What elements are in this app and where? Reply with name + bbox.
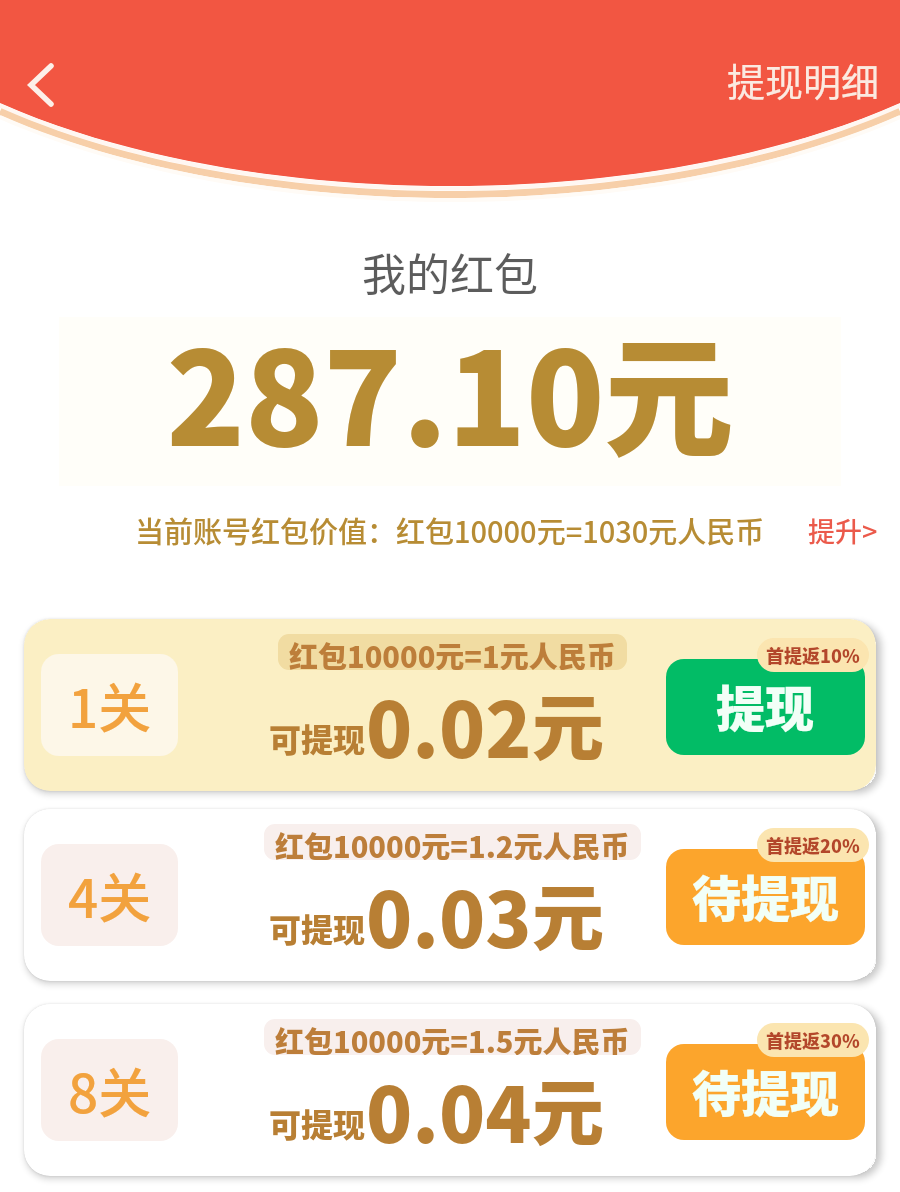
staticText: 当前账号红包价值：红包10000元=1030元人民币 <box>135 509 765 551</box>
staticText: 0.03 <box>366 860 532 970</box>
button[interactable]: 待提现 <box>666 1044 865 1140</box>
staticText: 首提返20% <box>766 832 860 858</box>
button[interactable]: 8关 <box>24 1004 876 1176</box>
staticText: 红包10000元=1.2元人民币 <box>275 824 630 860</box>
staticText: 4关 <box>68 857 152 934</box>
staticText: 1关 <box>68 667 152 744</box>
staticText: 元 <box>532 1055 605 1159</box>
button[interactable]: 1关 <box>24 619 876 791</box>
staticText: 可提现 <box>269 905 366 951</box>
button[interactable]: 待提现 <box>666 849 865 945</box>
staticText: 可提现 <box>269 1100 366 1146</box>
staticText: 红包10000元=1.5元人民币 <box>275 1019 630 1055</box>
staticText: 红包10000元=1元人民币 <box>289 634 616 670</box>
button[interactable]: 提现明细 <box>727 52 880 107</box>
staticText: 可提现 <box>269 715 366 761</box>
staticText: 提现 <box>716 670 815 741</box>
button[interactable]: Back <box>10 54 72 116</box>
staticText: 元 <box>532 860 605 964</box>
staticText: 待提现 <box>692 1055 840 1126</box>
staticText: 首提返30% <box>766 1027 860 1053</box>
staticText: 8关 <box>68 1052 152 1129</box>
button[interactable]: 4关 <box>24 809 876 981</box>
staticText: 首提返10% <box>766 642 860 668</box>
staticText: 待提现 <box>692 860 840 931</box>
staticText: 287.10元 <box>0 296 900 483</box>
staticText: 元 <box>532 670 605 774</box>
button[interactable]: 提现 <box>666 659 865 755</box>
staticText: 0.02 <box>366 670 532 780</box>
button[interactable]: 提升> <box>808 511 878 550</box>
staticText: 0.04 <box>366 1055 532 1165</box>
staticText: 我的红包 <box>0 240 900 304</box>
